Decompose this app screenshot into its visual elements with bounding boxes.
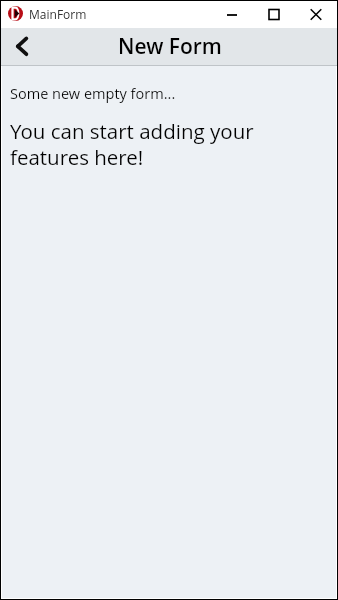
button[interactable]: Maximize bbox=[253, 1, 295, 28]
button[interactable]: Minimize bbox=[211, 1, 253, 28]
button[interactable]: Back bbox=[1, 28, 43, 66]
staticText: New Form bbox=[118, 32, 222, 61]
staticText: Some new empty form... bbox=[10, 84, 176, 104]
staticText: You can start adding your features here! bbox=[10, 117, 324, 171]
button[interactable]: Close bbox=[295, 1, 337, 28]
staticText: MainForm bbox=[29, 6, 87, 22]
